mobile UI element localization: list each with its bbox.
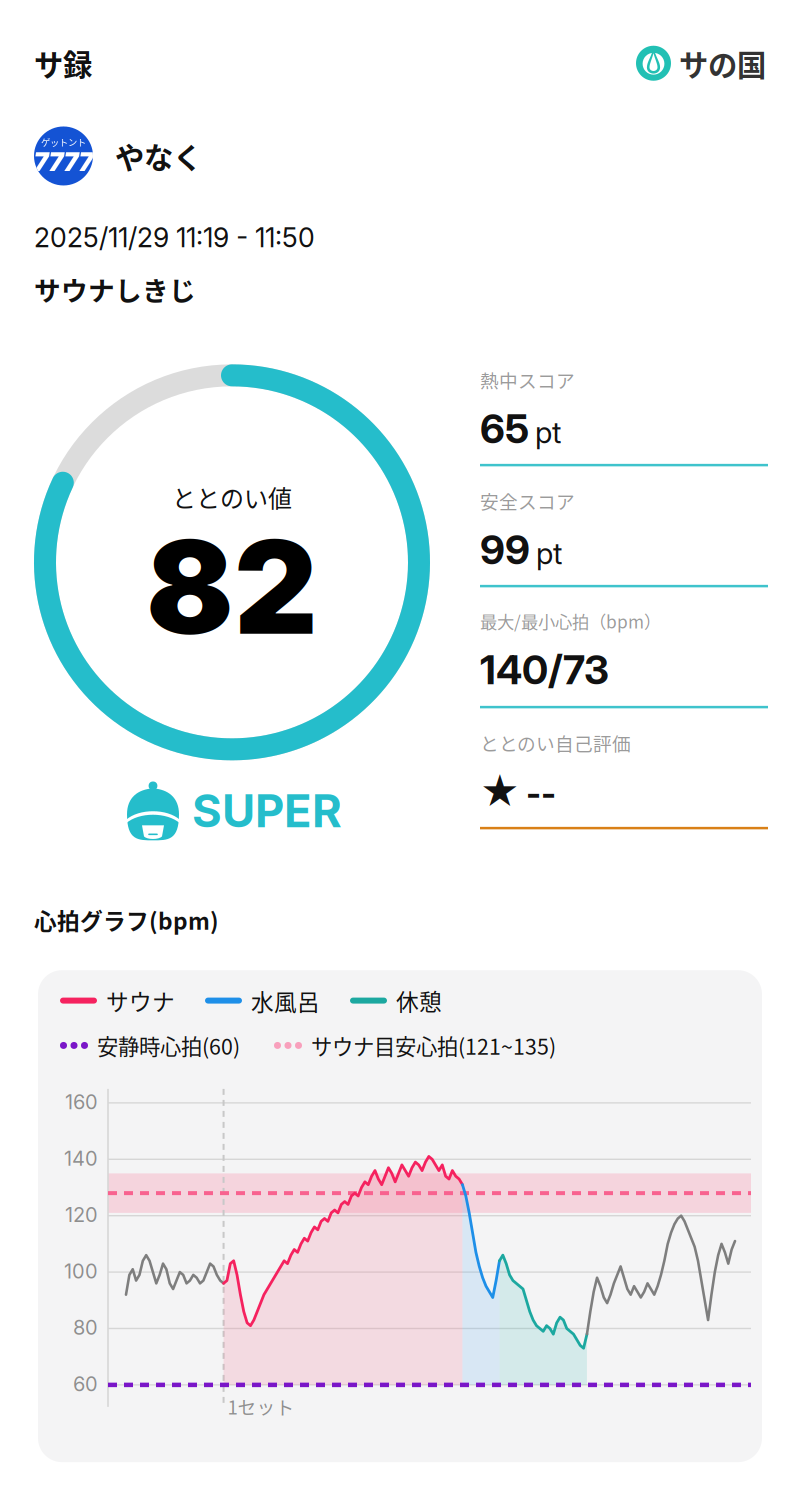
staticText: 休憩 [396, 984, 442, 1017]
staticText: pt [536, 536, 562, 571]
button[interactable]: ゲットント [0, 84, 800, 185]
staticText: 140/73 [480, 645, 609, 694]
staticText: 1セット [228, 1393, 295, 1420]
staticText: ととのい自己評価 [480, 729, 631, 756]
staticText: pt [535, 415, 561, 450]
staticText: 水風呂 [251, 984, 320, 1017]
staticText: 心拍グラフ(bpm) [34, 903, 219, 936]
staticText: SUPER [192, 783, 342, 838]
staticText: サ録 [34, 42, 92, 84]
staticText: ★ [480, 768, 520, 815]
button[interactable]: サの国 [636, 42, 766, 84]
staticText: サウナ [106, 984, 175, 1017]
staticText: ととのい値 [172, 480, 292, 514]
staticText: 安静時心拍(60) [97, 1030, 240, 1061]
staticText: 99 [480, 525, 530, 574]
staticText: 安全スコア [480, 487, 575, 514]
staticText: 65 [480, 404, 529, 453]
staticText: 最大/最小心拍（bpm） [480, 608, 661, 633]
staticText: サの国 [679, 42, 766, 84]
staticText: サウナ目安心拍(121~135) [311, 1030, 556, 1061]
staticText: 熱中スコア [480, 366, 575, 393]
staticText: -- [526, 773, 556, 814]
staticText: サウナしきじ [34, 270, 196, 308]
staticText: 80 [73, 1315, 98, 1340]
staticText: 100 [64, 1259, 98, 1283]
staticText: 160 [65, 1090, 98, 1114]
staticText: やなく [115, 135, 202, 177]
staticText: 2025/11/29 11:19 - 11:50 [34, 221, 315, 254]
staticText: 82 [146, 508, 318, 665]
staticText: 120 [65, 1203, 98, 1227]
staticText: ゲットント [41, 135, 86, 149]
staticText: 60 [73, 1372, 98, 1396]
staticText: 7777 [33, 147, 93, 177]
staticText: 140 [64, 1146, 98, 1170]
